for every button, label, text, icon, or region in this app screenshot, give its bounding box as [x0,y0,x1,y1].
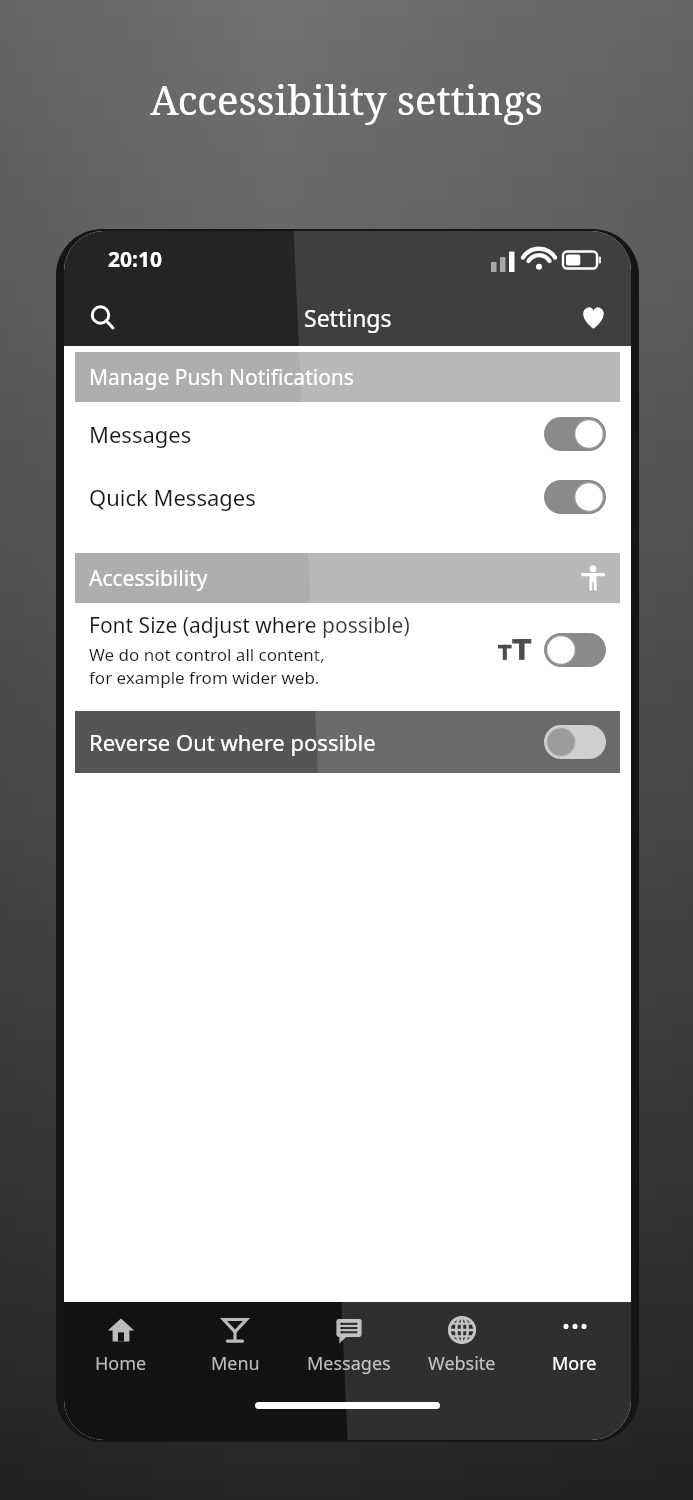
button[interactable]: Font Size (adjust where possible) [64,603,631,697]
staticText: Manage Push Notifications [89,363,354,392]
staticText: We do not control all content, [89,643,325,666]
button[interactable]: Menu [178,1302,292,1388]
staticText: Website [428,1351,496,1376]
staticText: Menu [211,1351,260,1376]
button[interactable]: Favourites [569,293,617,341]
staticText: Reverse Out where possible [89,727,376,757]
button[interactable]: Manage Push Notifications [75,352,620,402]
staticText: Messages [307,1351,391,1376]
button[interactable]: Home [64,1302,178,1388]
staticText: More [552,1351,597,1376]
button[interactable]: Search [78,293,126,341]
button[interactable]: Reverse Out where possible [75,711,620,773]
button[interactable]: Website [405,1302,518,1388]
button[interactable]: Messages [292,1302,405,1388]
button[interactable]: Quick Messages [64,465,631,528]
staticText: for example from wider web. [89,666,320,689]
button[interactable]: Messages [64,402,631,465]
staticText: Font Size (adjust where possible) [89,611,410,640]
button[interactable]: More [518,1302,631,1388]
staticText: 20:10 [108,245,162,274]
staticText: Quick Messages [89,482,544,512]
staticText: Accessibility settings [150,72,543,126]
staticText: Accessibility [89,564,208,593]
staticText: Settings [304,302,392,333]
button[interactable]: Accessibility [75,553,620,603]
staticText: Home [95,1351,147,1376]
staticText: Messages [89,419,544,449]
